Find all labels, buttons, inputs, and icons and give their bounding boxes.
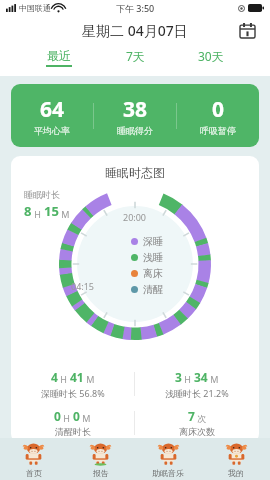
staticText: 报告: [93, 468, 109, 478]
staticText: 清醒时长: [55, 426, 91, 437]
staticText: 34: [194, 369, 208, 385]
staticText: 64: [40, 95, 65, 124]
staticText: 浅睡时长 21.2%: [165, 387, 229, 399]
button[interactable]: 0: [11, 408, 134, 437]
staticText: 助眠音乐: [152, 468, 184, 478]
staticText: 0: [73, 408, 80, 424]
button[interactable]: 我的: [202, 438, 270, 480]
staticText: 8: [24, 202, 32, 220]
staticText: 7: [188, 408, 195, 424]
button[interactable]: Calendar: [236, 19, 258, 41]
staticText: 38: [123, 95, 148, 124]
staticText: 最近: [47, 48, 71, 63]
staticText: 深睡时长 56.8%: [41, 387, 105, 399]
staticText: M: [59, 208, 70, 220]
button[interactable]: 7: [135, 408, 259, 437]
staticText: 离床: [143, 267, 163, 280]
staticText: 首页: [26, 468, 42, 478]
button[interactable]: 3: [135, 369, 259, 399]
staticText: 离床次数: [179, 426, 215, 437]
staticText: 浅睡: [143, 251, 163, 264]
staticText: H: [58, 373, 70, 385]
staticText: 中国联通: [19, 3, 51, 13]
button[interactable]: 报告: [67, 438, 134, 480]
staticText: H: [32, 208, 44, 220]
staticText: M: [208, 373, 219, 385]
staticText: 平均心率: [34, 125, 70, 136]
button[interactable]: 4: [11, 369, 134, 399]
staticText: 我的: [228, 468, 244, 478]
button[interactable]: 最近: [40, 47, 78, 68]
button[interactable]: 7天: [116, 47, 154, 69]
button[interactable]: 助眠音乐: [134, 438, 202, 480]
staticText: 次: [195, 412, 207, 424]
staticText: 3: [175, 369, 182, 385]
button[interactable]: 首页: [0, 438, 67, 480]
staticText: 4: [51, 369, 58, 385]
staticText: 20:00: [123, 211, 147, 223]
staticText: 7天: [126, 48, 145, 64]
staticText: 30天: [198, 48, 224, 64]
staticText: 清醒: [143, 283, 163, 296]
staticText: H: [61, 412, 73, 424]
staticText: 0: [54, 408, 61, 424]
staticText: 呼吸暂停: [200, 125, 236, 136]
staticText: 睡眠时态图: [11, 165, 259, 180]
staticText: 41: [70, 369, 84, 385]
staticText: 深睡: [143, 235, 163, 248]
staticText: 0: [212, 95, 225, 124]
staticText: M: [84, 373, 95, 385]
button[interactable]: 30天: [192, 47, 230, 69]
staticText: 下午 3:50: [116, 2, 155, 14]
staticText: 15: [44, 202, 59, 220]
staticText: H: [182, 373, 194, 385]
staticText: 睡眠时长: [24, 189, 60, 200]
staticText: M: [80, 412, 91, 424]
button[interactable]: 38: [94, 95, 176, 136]
staticText: 04:15: [71, 280, 95, 292]
staticText: 睡眠得分: [117, 125, 153, 136]
staticText: 星期二 04月07日: [82, 21, 188, 40]
button[interactable]: 64: [11, 95, 93, 136]
button[interactable]: 0: [177, 95, 259, 136]
